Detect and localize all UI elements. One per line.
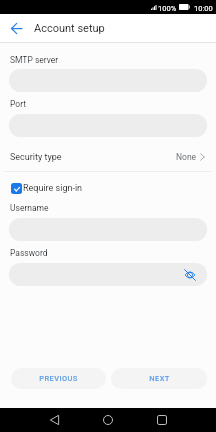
button[interactable]: Show password	[182, 267, 197, 282]
staticText: NEXT	[149, 374, 170, 383]
staticText: Require sign-in	[23, 183, 83, 194]
staticText: Security type	[10, 152, 62, 163]
staticText: PREVIOUS	[39, 374, 78, 383]
staticText: None	[176, 152, 197, 162]
staticText: Account setup	[34, 22, 105, 35]
staticText: 100%	[158, 4, 177, 13]
button[interactable]: Back	[5, 15, 27, 42]
button[interactable]: Security type	[0, 145, 216, 172]
staticText: SMTP server	[10, 55, 59, 65]
button[interactable]: NEXT	[111, 368, 207, 389]
staticText: 10:00	[194, 4, 213, 13]
staticText: Port	[10, 99, 27, 109]
button[interactable]: Show password	[9, 263, 207, 286]
button[interactable]: Recents	[148, 408, 176, 432]
staticText: Username	[10, 203, 49, 213]
button[interactable]: Back	[40, 408, 68, 432]
staticText: Password	[10, 248, 48, 258]
button[interactable]: PREVIOUS	[11, 368, 106, 389]
button[interactable]: Require sign-in	[0, 179, 216, 197]
button[interactable]: Home	[94, 408, 122, 432]
